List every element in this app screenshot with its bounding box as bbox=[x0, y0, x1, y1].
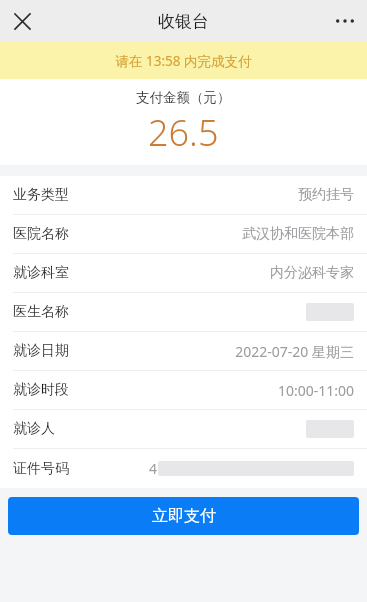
staticText: 内分泌科专家 bbox=[270, 264, 354, 282]
staticText: 医生名称 bbox=[13, 303, 69, 321]
button[interactable]: 就诊科室 bbox=[0, 254, 367, 292]
staticText: 就诊人 bbox=[13, 420, 55, 438]
staticText: 请在 13:58 内完成支付 bbox=[115, 52, 252, 70]
staticText: 4 bbox=[149, 459, 158, 478]
staticText: 26.5 bbox=[148, 108, 219, 157]
staticText: 预约挂号 bbox=[298, 186, 354, 204]
staticText: 武汉协和医院本部 bbox=[242, 225, 354, 243]
button[interactable]: 就诊日期 bbox=[0, 332, 367, 370]
button[interactable]: 医院名称 bbox=[0, 215, 367, 253]
button[interactable]: 业务类型 bbox=[0, 176, 367, 214]
staticText: 证件号码 bbox=[13, 460, 69, 478]
button[interactable]: 就诊时段 bbox=[0, 371, 367, 409]
staticText: 支付金额（元） bbox=[136, 89, 231, 106]
button[interactable]: 立即支付 bbox=[8, 497, 359, 535]
button[interactable]: Close bbox=[0, 0, 44, 42]
button[interactable]: 证件号码 bbox=[0, 449, 367, 488]
staticText: 医院名称 bbox=[13, 225, 69, 243]
staticText: 10:00-11:00 bbox=[277, 381, 354, 400]
staticText: 就诊日期 bbox=[13, 342, 69, 360]
button[interactable]: More options bbox=[323, 0, 367, 42]
staticText: 业务类型 bbox=[13, 186, 69, 204]
staticText: 就诊时段 bbox=[13, 381, 69, 399]
button[interactable]: 医生名称 bbox=[0, 293, 367, 331]
staticText: 收银台 bbox=[158, 11, 209, 32]
button[interactable]: 就诊人 bbox=[0, 410, 367, 448]
staticText: 就诊科室 bbox=[13, 264, 69, 282]
staticText: 2022-07-20 星期三 bbox=[235, 342, 354, 361]
staticText: 立即支付 bbox=[152, 506, 216, 526]
